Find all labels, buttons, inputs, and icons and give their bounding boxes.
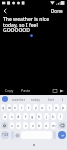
button[interactable]: g	[30, 113, 35, 120]
button[interactable]: k	[51, 113, 56, 120]
staticText: Paste	[21, 88, 31, 93]
staticText: g	[31, 114, 34, 119]
staticText: u	[41, 105, 44, 110]
button[interactable]: Paste	[20, 86, 32, 95]
staticText: r	[21, 105, 23, 110]
button[interactable]: j	[44, 113, 49, 120]
button[interactable]: u	[40, 104, 45, 111]
button[interactable]: Done	[47, 6, 67, 16]
staticText: k	[52, 114, 55, 119]
button[interactable]: Period	[53, 131, 56, 139]
staticText: a	[4, 114, 7, 119]
button[interactable]: s	[9, 113, 14, 120]
button[interactable]: Keyboard layout	[51, 87, 58, 94]
staticText: t	[28, 105, 30, 110]
staticText: Done	[51, 8, 63, 14]
button[interactable]: today	[27, 97, 43, 102]
button[interactable]: Send	[58, 87, 65, 94]
button[interactable]: r	[19, 104, 24, 111]
staticText: e	[14, 105, 17, 110]
staticText: x	[17, 123, 20, 128]
staticText: v	[32, 123, 34, 128]
staticText: today	[31, 97, 40, 102]
staticText: s	[11, 114, 13, 119]
button[interactable]: Enter	[58, 131, 66, 139]
staticText: q	[2, 105, 5, 110]
button[interactable]: c	[23, 122, 28, 129]
staticText: weather	[12, 97, 26, 102]
button[interactable]: q	[1, 104, 5, 111]
button[interactable]: i	[47, 104, 52, 111]
button[interactable]: y	[33, 104, 38, 111]
staticText: l	[60, 114, 61, 119]
button[interactable]: Comma	[11, 131, 14, 139]
button[interactable]: d	[16, 113, 21, 120]
staticText: feel	[48, 97, 54, 102]
staticText: m	[52, 123, 56, 128]
button[interactable]: n	[44, 122, 49, 129]
button[interactable]: w	[7, 104, 11, 111]
staticText: i	[49, 105, 50, 110]
staticText: h	[38, 114, 41, 119]
staticText: w	[8, 105, 11, 110]
button[interactable]: v	[30, 122, 35, 129]
button[interactable]: l	[58, 113, 63, 120]
button[interactable]: z	[10, 122, 14, 129]
staticText: Copy	[5, 88, 14, 93]
button[interactable]: ?123	[1, 131, 9, 139]
button[interactable]: m	[51, 122, 56, 129]
button[interactable]: f	[23, 113, 28, 120]
button[interactable]: feel	[43, 97, 59, 102]
staticText: y	[35, 105, 37, 110]
button[interactable]: Emoji	[15, 133, 20, 138]
button[interactable]: Backspace	[58, 122, 66, 129]
button[interactable]: Shift	[1, 122, 8, 129]
button[interactable]: o	[54, 104, 59, 111]
staticText: j	[46, 114, 47, 119]
button[interactable]: h	[37, 113, 42, 120]
staticText: p	[62, 105, 65, 110]
staticText: f	[25, 114, 27, 119]
button[interactable]: b	[37, 122, 42, 129]
staticText: ?123	[2, 133, 9, 137]
button[interactable]: More options	[59, 96, 65, 102]
staticText: c	[25, 123, 27, 128]
button[interactable]: Google Assistant	[2, 96, 8, 102]
staticText: b	[38, 123, 41, 128]
button[interactable]: e	[13, 104, 17, 111]
staticText: The weather is nice today, so I feel GOO…	[3, 16, 50, 34]
staticText: o	[55, 105, 58, 110]
button[interactable]: Copy	[4, 86, 15, 95]
staticText: n	[45, 123, 48, 128]
staticText: z	[11, 123, 13, 128]
button[interactable]: p	[61, 104, 66, 111]
button[interactable]: t	[26, 104, 31, 111]
staticText: d	[17, 114, 20, 119]
button[interactable]: x	[16, 122, 21, 129]
button[interactable]: a	[3, 113, 7, 120]
button[interactable]: weather	[10, 97, 27, 102]
button[interactable]: Back	[0, 6, 10, 16]
